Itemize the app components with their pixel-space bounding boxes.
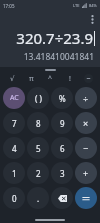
button[interactable]: Backspace (51, 187, 73, 209)
button[interactable]: √ (2, 72, 22, 85)
button[interactable]: More functions (84, 74, 93, 83)
staticText: 3 (60, 168, 65, 179)
button[interactable]: Divide (75, 87, 97, 109)
staticText: 13.418410041841 (23, 51, 94, 63)
staticText: × (83, 117, 89, 129)
button[interactable]: 9 (51, 112, 73, 134)
staticText: 5 (36, 143, 41, 154)
button[interactable]: 2 (27, 162, 49, 184)
staticText: ! (69, 74, 71, 84)
staticText: AC (10, 93, 19, 103)
staticText: % (59, 93, 66, 104)
staticText: . (37, 193, 40, 204)
staticText: π (29, 74, 34, 84)
button[interactable]: More options (85, 11, 99, 27)
staticText: 4 (12, 143, 17, 154)
button[interactable]: 3 (51, 162, 73, 184)
button[interactable]: 6 (51, 137, 73, 159)
staticText: − (83, 142, 89, 154)
button[interactable]: Multiply (75, 112, 97, 134)
staticText: 9 (60, 118, 65, 129)
button[interactable]: AC (3, 87, 25, 109)
staticText: 84% (89, 3, 97, 8)
button[interactable]: ! (60, 72, 79, 85)
button[interactable]: π (22, 72, 41, 85)
staticText: 6 (60, 143, 65, 154)
staticText: 320.7÷23.9 (16, 28, 93, 48)
staticText: 0 (12, 193, 17, 204)
button[interactable]: 5 (27, 137, 49, 159)
button[interactable]: % (51, 87, 73, 109)
button[interactable]: 1 (3, 162, 25, 184)
staticText: ( ) (35, 93, 42, 104)
staticText: LTE (73, 3, 80, 8)
button[interactable]: 0 (3, 187, 25, 209)
staticText: + (83, 167, 89, 179)
staticText: 7 (12, 118, 17, 129)
staticText: 1 (12, 168, 17, 179)
button[interactable]: 7 (3, 112, 25, 134)
button[interactable]: Equals (75, 187, 97, 209)
button[interactable]: 8 (27, 112, 49, 134)
button[interactable]: . (27, 187, 49, 209)
staticText: √ (10, 75, 15, 83)
staticText: ÷ (83, 92, 89, 104)
button[interactable]: 4 (3, 137, 25, 159)
staticText: ^ (48, 74, 53, 84)
staticText: 17:05 (3, 3, 15, 9)
button[interactable]: Plus (75, 162, 97, 184)
button[interactable]: Expand keypad (45, 69, 56, 71)
button[interactable]: Minus (75, 137, 97, 159)
button[interactable]: ( ) (27, 87, 49, 109)
staticText: 2 (36, 168, 41, 179)
button[interactable]: ^ (41, 72, 60, 85)
staticText: 8 (36, 118, 41, 129)
